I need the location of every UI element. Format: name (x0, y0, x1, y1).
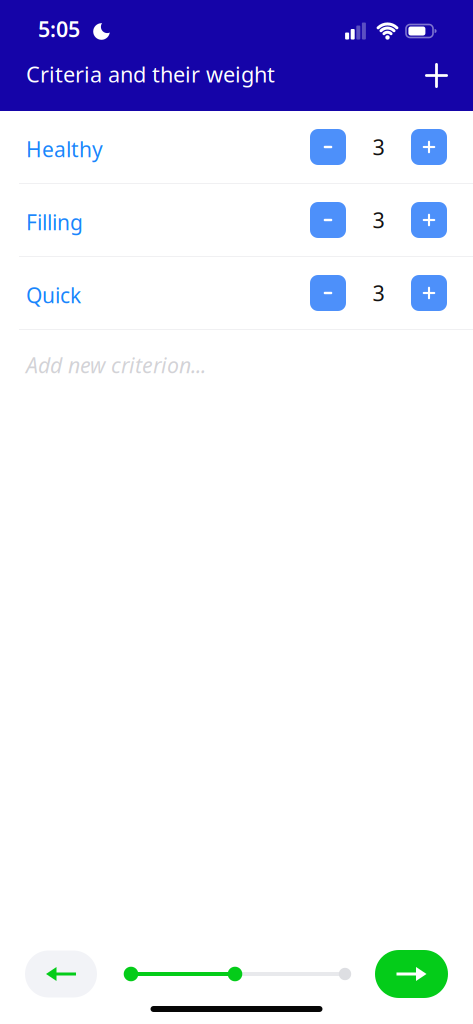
button[interactable]: Decrease weight (310, 275, 346, 311)
staticText: Healthy (26, 135, 103, 163)
staticText: Quick (26, 281, 81, 309)
staticText: 3 (372, 205, 384, 235)
button[interactable]: Increase weight (411, 275, 447, 311)
button[interactable]: Back (25, 950, 97, 997)
staticText: Add new criterion... (26, 350, 206, 380)
button[interactable]: Next (375, 950, 448, 998)
button[interactable]: Add criterion (424, 63, 449, 88)
staticText: 5:05 (38, 14, 80, 44)
staticText: Criteria and their weight (26, 59, 275, 89)
staticText: 3 (372, 278, 384, 308)
staticText: 3 (372, 132, 384, 162)
staticText: Filling (26, 208, 83, 236)
button[interactable]: Decrease weight (310, 129, 346, 165)
button[interactable]: Decrease weight (310, 202, 346, 238)
button[interactable]: Increase weight (411, 129, 447, 165)
button[interactable]: Add new criterion (0, 330, 473, 403)
button[interactable]: Increase weight (411, 202, 447, 238)
